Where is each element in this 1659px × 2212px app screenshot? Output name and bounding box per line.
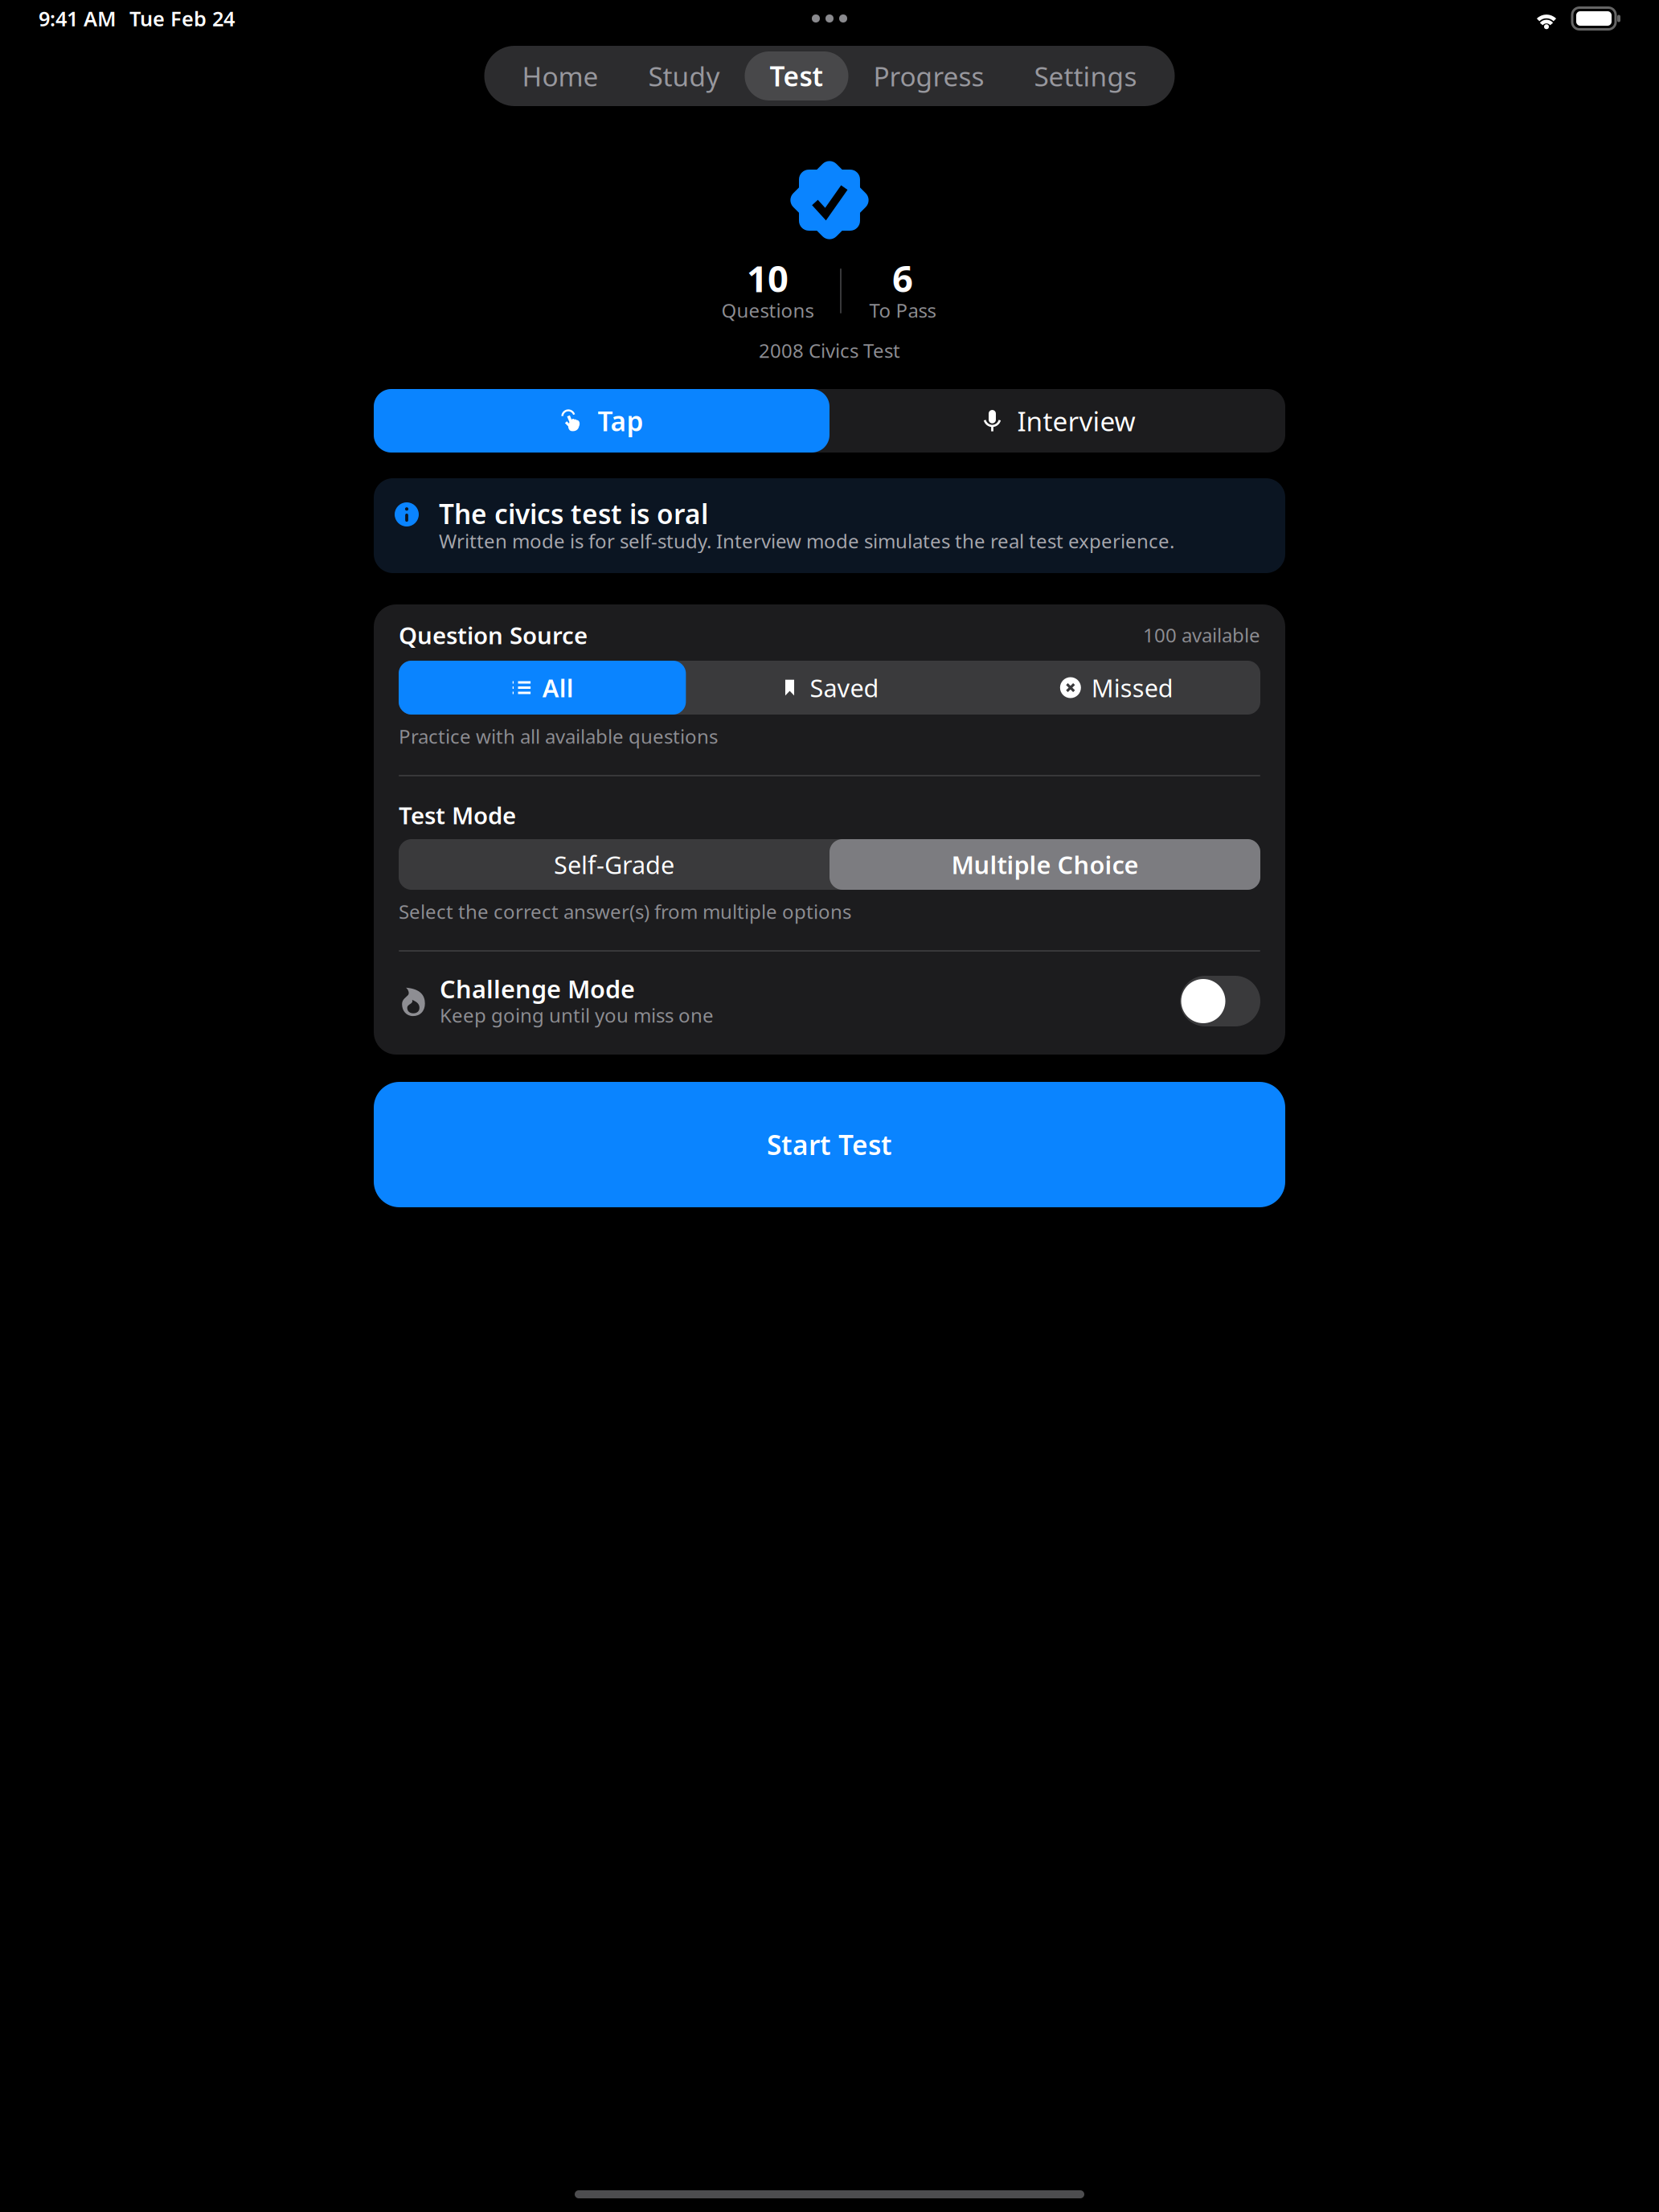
button[interactable]: Start Test [374,1082,1285,1207]
staticText: Test Mode [399,799,516,831]
staticText: Practice with all available questions [399,723,718,749]
button[interactable]: Interview [829,389,1285,453]
staticText: Tap [598,403,643,439]
button[interactable]: All [399,661,686,715]
button[interactable]: Multiple Choice [829,839,1260,890]
staticText: 9:41 AM [39,5,117,32]
staticText: Test [770,58,823,94]
staticText: Settings [1034,58,1137,94]
button[interactable]: Progress [848,51,1009,100]
staticText: The civics test is oral [439,496,708,531]
staticText: Progress [873,58,984,94]
staticText: Questions [721,297,814,323]
button[interactable]: Tap [374,389,829,453]
staticText: 100 available [1143,622,1260,648]
staticText: Start Test [767,1127,892,1162]
staticText: Home [522,58,598,94]
staticText: Question Source [399,619,588,651]
button[interactable]: Study [623,51,745,100]
button[interactable]: Test [745,51,848,100]
staticText: Challenge Mode [440,972,635,1005]
staticText: Written mode is for self-study. Intervie… [439,528,1174,554]
staticText: Self-Grade [554,848,674,881]
staticText: Select the correct answer(s) from multip… [399,899,851,924]
staticText: Interview [1017,403,1135,439]
staticText: Study [648,58,720,94]
staticText: Missed [1091,671,1173,704]
staticText: Saved [810,671,879,704]
staticText: To Pass [869,297,936,323]
staticText: Keep going until you miss one [440,1002,714,1028]
button[interactable]: Home [497,51,623,100]
staticText: 6 [892,254,913,302]
staticText: 10 [747,254,789,302]
button[interactable]: Saved [686,661,973,715]
staticText: 2008 Civics Test [759,338,900,363]
staticText: Multiple Choice [951,848,1139,881]
button[interactable]: Challenge Mode [399,976,1260,1026]
button[interactable]: Self-Grade [399,839,829,890]
button[interactable]: Settings [1009,51,1162,100]
staticText: Tue Feb 24 [129,5,235,32]
button[interactable]: Missed [973,661,1260,715]
staticText: All [542,671,574,704]
